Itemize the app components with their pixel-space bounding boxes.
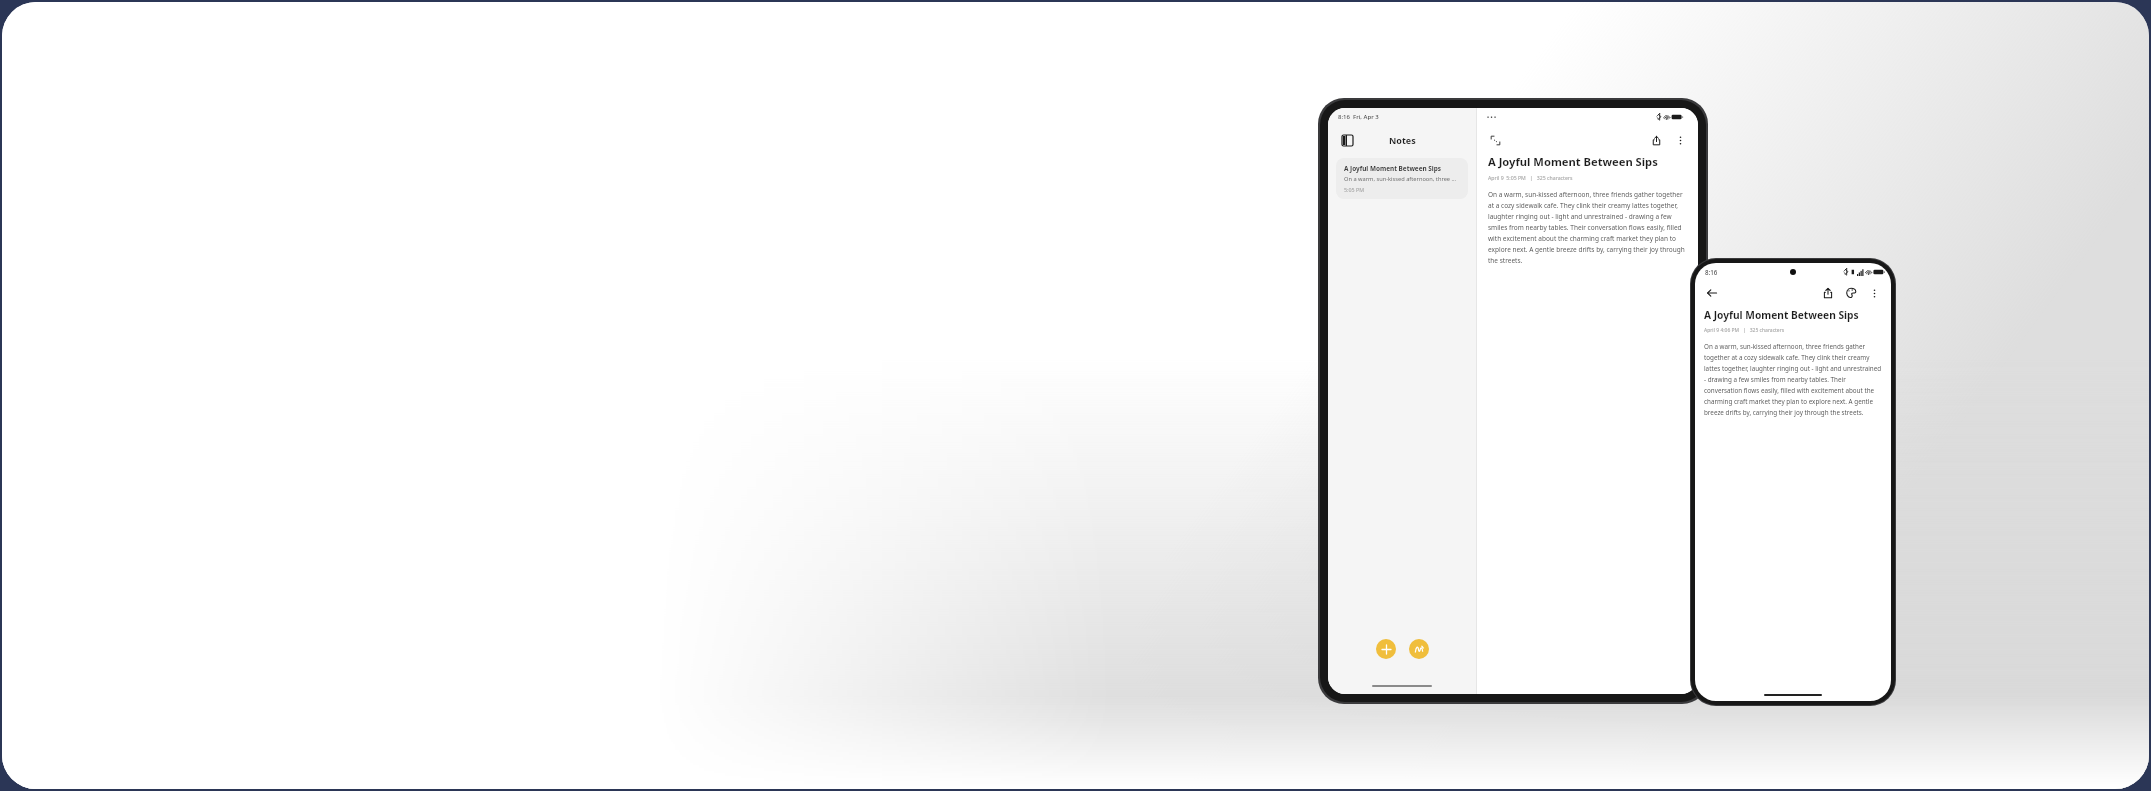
staticText: April 9 5:05 PM | 325 characters xyxy=(1488,174,1573,181)
staticText: 8:16 Fri, Apr 3 xyxy=(1338,113,1379,121)
button[interactable]: New note xyxy=(1376,639,1396,659)
button[interactable]: A Joyful Moment Between Sips xyxy=(1336,158,1468,199)
staticText: On a warm, sun-kissed afternoon, three … xyxy=(1344,175,1457,183)
button[interactable]: Theme xyxy=(1843,285,1859,301)
button[interactable]: Expand xyxy=(1487,132,1503,148)
staticText: 8:16 xyxy=(1705,268,1718,276)
staticText: Notes xyxy=(1389,134,1416,146)
button[interactable]: More options xyxy=(1672,132,1688,148)
button[interactable]: Back xyxy=(1704,285,1720,301)
staticText: A Joyful Moment Between Sips xyxy=(1704,308,1859,322)
staticText: • • • xyxy=(1487,113,1497,121)
staticText: On a warm, sun-kissed afternoon, three f… xyxy=(1488,190,1687,265)
button[interactable]: Share xyxy=(1820,285,1836,301)
staticText: A Joyful Moment Between Sips xyxy=(1488,154,1658,169)
button[interactable]: More options xyxy=(1866,285,1882,301)
staticText: April 9 4:06 PM | 325 characters xyxy=(1704,327,1785,334)
button[interactable]: Toggle sidebar xyxy=(1338,131,1356,149)
button[interactable]: AI assist xyxy=(1409,639,1429,659)
staticText: 5:05 PM xyxy=(1344,186,1365,193)
button[interactable]: Share xyxy=(1648,132,1664,148)
staticText: On a warm, sun-kissed afternoon, three f… xyxy=(1704,342,1882,417)
staticText: A Joyful Moment Between Sips xyxy=(1344,164,1441,173)
